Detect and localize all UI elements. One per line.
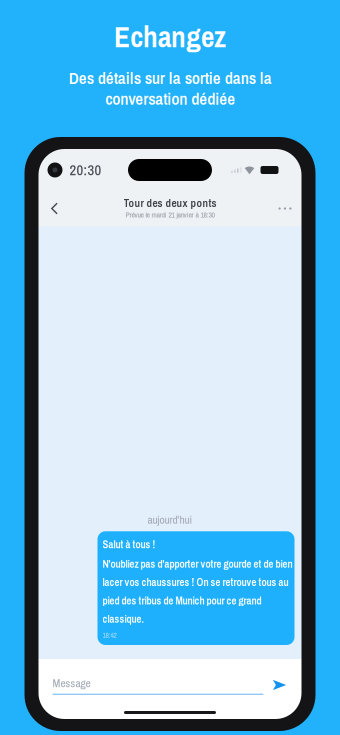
staticText: Salut à tous ! [102, 537, 155, 552]
staticText: Tour des deux ponts [123, 195, 216, 210]
button[interactable]: Retour [38, 191, 82, 226]
button[interactable]: Options [257, 191, 301, 226]
staticText: N'oubliez pas d'apporter votre gourde et… [102, 557, 292, 626]
staticText: Echangez [114, 17, 226, 56]
button[interactable]: Envoyer [269, 675, 289, 695]
staticText: Prévue le mardi 21 janvier à 18:30 [125, 209, 214, 220]
staticText: Message [52, 675, 90, 691]
staticText: 18:42 [102, 630, 116, 640]
staticText: aujourd'hui [147, 512, 192, 527]
staticText: 20:30 [69, 160, 101, 180]
staticText: Des détails sur la sortie dans la conver… [68, 66, 271, 110]
